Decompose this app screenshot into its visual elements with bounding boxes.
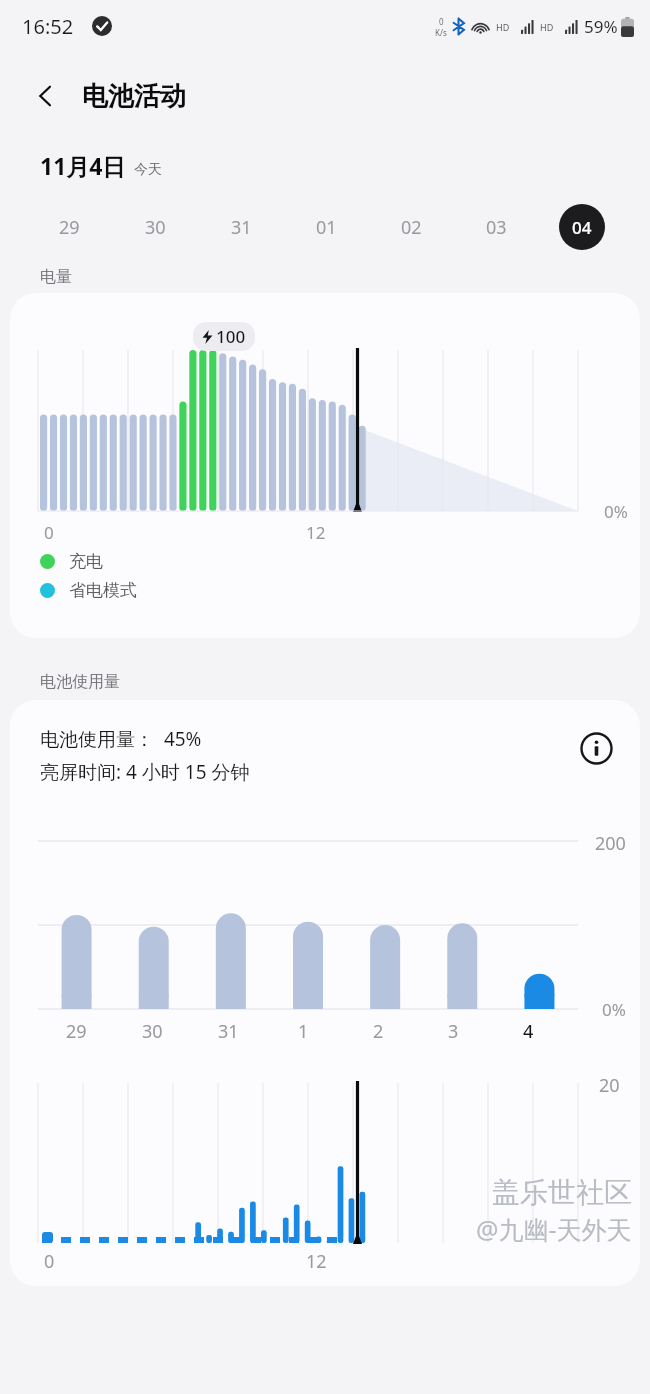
staticText: 31	[231, 215, 252, 240]
staticText: 盖乐世社区	[492, 1175, 632, 1210]
staticText: HD	[496, 21, 510, 33]
button[interactable]: 01	[284, 199, 369, 255]
staticText: 0	[44, 521, 54, 544]
staticText: 电池使用量： 45%	[40, 726, 202, 752]
staticText: 0	[439, 16, 444, 27]
staticText: 30	[142, 1019, 163, 1044]
staticText: 04	[572, 216, 592, 239]
staticText: 0%	[602, 998, 626, 1021]
button[interactable]: 电池使用量： 45%	[10, 700, 640, 1286]
staticText: HD	[540, 21, 554, 33]
staticText: 今天	[134, 161, 162, 179]
staticText: 29	[66, 1019, 87, 1044]
staticText: 电池使用量	[40, 672, 120, 692]
button[interactable]: Info	[574, 726, 618, 770]
staticText: 59%	[584, 15, 618, 38]
staticText: 01	[316, 215, 337, 240]
button[interactable]: 03	[454, 199, 539, 255]
staticText: 30	[145, 215, 166, 240]
button[interactable]: 04	[539, 199, 624, 255]
button[interactable]: Back	[24, 74, 68, 118]
staticText: 20	[599, 1073, 620, 1098]
staticText: 电量	[40, 267, 72, 287]
button[interactable]: 31	[198, 199, 284, 255]
staticText: 11月4日	[40, 150, 126, 181]
staticText: 1	[298, 1019, 309, 1044]
button[interactable]: 0%	[10, 293, 640, 638]
staticText: 3	[448, 1019, 459, 1044]
button[interactable]: 30	[112, 199, 198, 255]
staticText: 02	[401, 215, 422, 240]
staticText: @九幽-天外天	[476, 1212, 632, 1246]
staticText: 12	[306, 1249, 327, 1274]
staticText: 省电模式	[69, 580, 137, 601]
staticText: 12	[306, 521, 326, 544]
staticText: 2	[373, 1019, 384, 1044]
staticText: 100	[216, 325, 246, 348]
staticText: 200	[595, 831, 626, 856]
button[interactable]: 29	[26, 199, 112, 255]
staticText: 03	[486, 215, 507, 240]
staticText: 0	[44, 1249, 55, 1274]
staticText: K/s	[435, 27, 447, 38]
staticText: 亮屏时间: 4 小时 15 分钟	[40, 759, 250, 785]
staticText: 31	[218, 1019, 239, 1044]
staticText: 4	[523, 1019, 534, 1044]
staticText: 电池活动	[82, 80, 186, 113]
staticText: 充电	[69, 551, 103, 572]
button[interactable]: 02	[369, 199, 454, 255]
staticText: 29	[59, 215, 80, 240]
staticText: 0%	[604, 500, 628, 523]
staticText: 16:52	[22, 13, 74, 40]
